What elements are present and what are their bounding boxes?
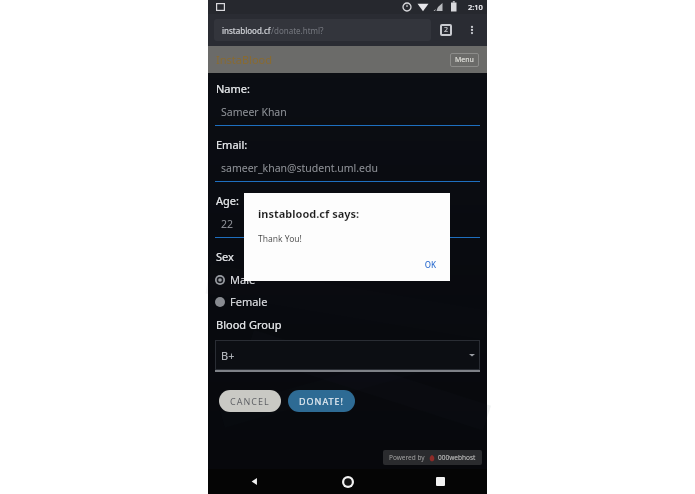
staticText: Powered by bbox=[389, 453, 425, 462]
staticText: Age: bbox=[216, 193, 239, 208]
staticText: Male bbox=[230, 272, 256, 287]
staticText: instablood.cf says: bbox=[258, 206, 360, 221]
button[interactable]: More options bbox=[461, 19, 483, 41]
button[interactable]: Back bbox=[208, 469, 301, 494]
staticText: B+ bbox=[221, 348, 235, 363]
staticText: 22 bbox=[221, 217, 234, 231]
staticText: /donate.html? bbox=[271, 25, 324, 36]
button[interactable]: OK bbox=[410, 254, 450, 275]
staticText: instablood.cf bbox=[222, 25, 271, 36]
staticText: 2 bbox=[444, 25, 449, 35]
button[interactable]: sameer_khan@student.uml.edu bbox=[215, 161, 480, 182]
staticText: Sex bbox=[216, 249, 234, 264]
button[interactable]: Menu bbox=[450, 53, 479, 67]
button[interactable]: Male bbox=[215, 271, 256, 288]
staticText: Email: bbox=[216, 137, 248, 152]
button[interactable]: Sameer Khan bbox=[215, 105, 480, 126]
button[interactable]: Female bbox=[215, 293, 268, 310]
button[interactable]: Recent apps bbox=[394, 469, 487, 494]
button[interactable]: 22 bbox=[215, 217, 480, 238]
button[interactable]: CANCEL bbox=[219, 390, 281, 412]
staticText: Thank You! bbox=[258, 233, 302, 245]
staticText: CANCEL bbox=[230, 395, 270, 407]
button[interactable]: instablood.cf bbox=[214, 19, 431, 41]
staticText: Menu bbox=[455, 55, 474, 65]
button[interactable]: B+ bbox=[215, 340, 480, 372]
staticText: OK bbox=[424, 259, 436, 270]
staticText: 2:10 bbox=[468, 2, 483, 12]
button[interactable]: DONATE! bbox=[288, 390, 355, 412]
staticText: sameer_khan@student.uml.edu bbox=[221, 161, 378, 175]
staticText: Sameer Khan bbox=[221, 105, 287, 119]
staticText: InstaBlood bbox=[216, 52, 273, 67]
button[interactable]: Home bbox=[301, 469, 394, 494]
staticText: Blood Group bbox=[216, 317, 282, 332]
staticText: Female bbox=[230, 294, 268, 309]
staticText: 000webhost bbox=[438, 453, 476, 462]
button[interactable]: Tabs, 2 open bbox=[435, 19, 457, 41]
staticText: Name: bbox=[216, 81, 250, 96]
button[interactable]: Powered by bbox=[383, 450, 482, 465]
staticText: DONATE! bbox=[299, 395, 344, 407]
